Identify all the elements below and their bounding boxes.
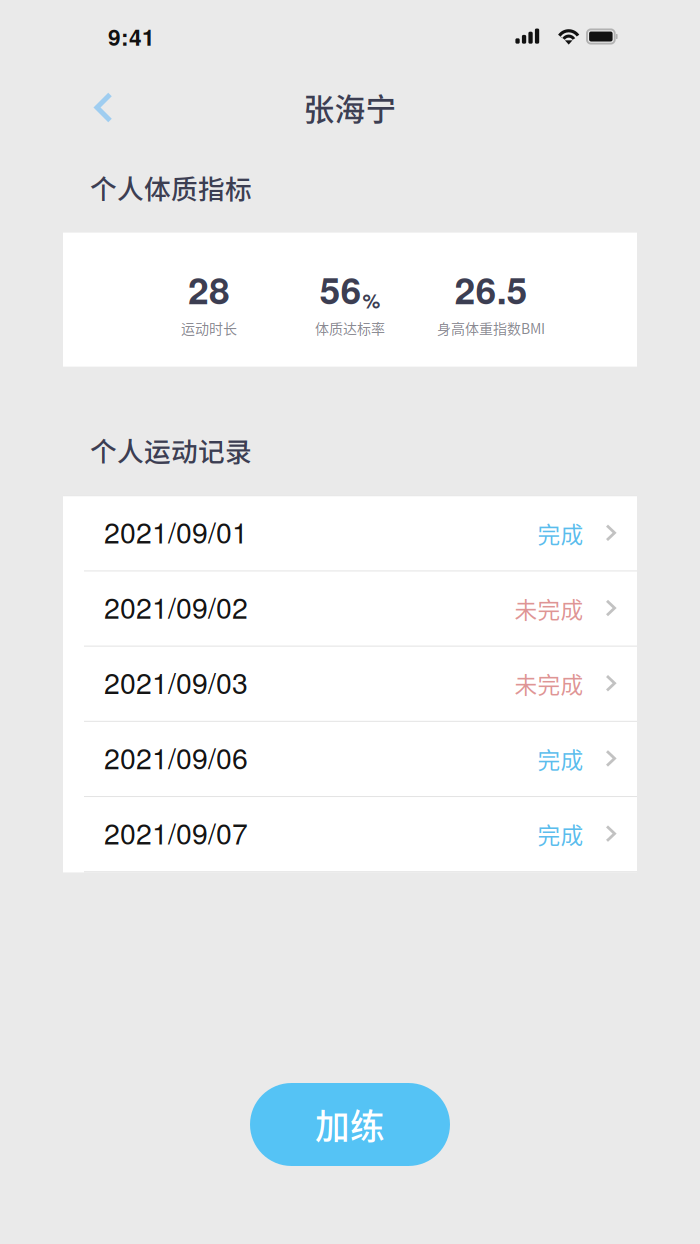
button[interactable]: Back	[0, 80, 137, 135]
staticText: 完成	[538, 742, 584, 775]
button[interactable]: 2021/09/01	[63, 496, 637, 570]
staticText: 56	[319, 262, 361, 316]
staticText: 加练	[315, 1099, 385, 1150]
button[interactable]: 2021/09/06	[63, 722, 637, 796]
staticText: 未完成	[515, 592, 584, 625]
staticText: 26.5	[454, 262, 527, 316]
staticText: 2021/09/03	[104, 661, 248, 702]
staticText: 身高体重指数BMI	[437, 318, 545, 338]
staticText: 9:41	[108, 20, 155, 53]
staticText: 2021/09/01	[104, 511, 248, 552]
staticText: 完成	[538, 517, 584, 550]
staticText: %	[362, 286, 380, 315]
staticText: 2021/09/06	[104, 737, 248, 777]
staticText: 完成	[538, 818, 584, 850]
staticText: 体质达标率	[315, 318, 385, 338]
staticText: 28	[188, 262, 230, 316]
button[interactable]: 2021/09/07	[63, 797, 637, 871]
staticText: 2021/09/07	[104, 812, 248, 852]
button[interactable]: 2021/09/02	[63, 571, 637, 646]
staticText: 未完成	[515, 667, 584, 700]
button[interactable]: 加练	[250, 1083, 450, 1166]
staticText: 张海宁	[303, 85, 396, 130]
button[interactable]: 2021/09/03	[63, 647, 637, 721]
staticText: 运动时长	[181, 318, 237, 338]
staticText: 个人运动记录	[90, 431, 252, 469]
staticText: 2021/09/02	[104, 586, 248, 627]
staticText: 个人体质指标	[90, 168, 252, 207]
